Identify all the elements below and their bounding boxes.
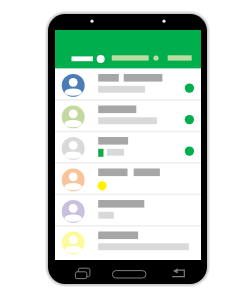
button[interactable]: Recent apps (71, 264, 95, 282)
button[interactable]: Menu (55, 30, 201, 68)
button[interactable]: Conversation 3 (55, 131, 201, 163)
button[interactable]: Conversation 4 (55, 163, 201, 195)
button[interactable]: Back (168, 264, 192, 282)
button[interactable]: Conversation 6 (55, 226, 201, 258)
button[interactable]: Conversation 2 (55, 100, 201, 132)
button[interactable]: Home (109, 264, 149, 282)
button[interactable]: Conversation 1 (55, 68, 201, 100)
button[interactable]: Conversation 5 (55, 194, 201, 226)
